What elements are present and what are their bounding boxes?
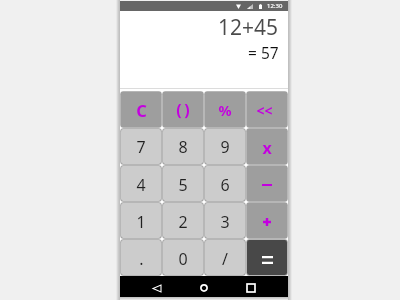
button[interactable]: 6	[205, 166, 245, 201]
staticText: /	[222, 248, 228, 270]
staticText: 4	[136, 174, 146, 196]
staticText: 5	[178, 174, 188, 196]
button[interactable]: Back	[144, 277, 170, 297]
staticText: 3	[220, 211, 230, 233]
staticText: x	[262, 137, 272, 159]
staticText: 0	[178, 248, 188, 270]
staticText: 2	[178, 211, 188, 233]
button[interactable]: x	[247, 129, 287, 164]
button[interactable]: /	[205, 240, 245, 275]
staticText: 1	[136, 211, 146, 233]
button[interactable]: 1	[121, 203, 161, 238]
button[interactable]: .	[121, 240, 161, 275]
staticText: %	[218, 100, 232, 120]
staticText: 8	[178, 136, 188, 158]
button[interactable]: 7	[121, 129, 161, 164]
staticText: .	[139, 248, 144, 270]
button[interactable]: <<	[247, 92, 287, 127]
button[interactable]: Equals	[247, 240, 287, 275]
button[interactable]: 0	[163, 240, 203, 275]
staticText: 7	[136, 136, 146, 158]
button[interactable]: 3	[205, 203, 245, 238]
staticText: 12:30	[267, 2, 283, 10]
staticText: ( )	[176, 99, 190, 121]
button[interactable]: Recents	[238, 277, 264, 297]
staticText: <<	[256, 101, 273, 120]
staticText: 12+45	[218, 13, 279, 42]
button[interactable]: 4	[121, 166, 161, 201]
button[interactable]: C	[121, 92, 161, 127]
button[interactable]: 8	[163, 129, 203, 164]
button[interactable]: %	[205, 92, 245, 127]
staticText: = 57	[248, 42, 279, 63]
button[interactable]: 2	[163, 203, 203, 238]
staticText: 6	[220, 174, 230, 196]
button[interactable]: 9	[205, 129, 245, 164]
staticText: 9	[220, 136, 230, 158]
staticText: C	[136, 99, 147, 121]
button[interactable]: 5	[163, 166, 203, 201]
button[interactable]: Minus	[247, 166, 287, 201]
button[interactable]: Home	[191, 277, 217, 297]
button[interactable]: Plus	[247, 203, 287, 238]
button[interactable]: ( )	[163, 92, 203, 127]
